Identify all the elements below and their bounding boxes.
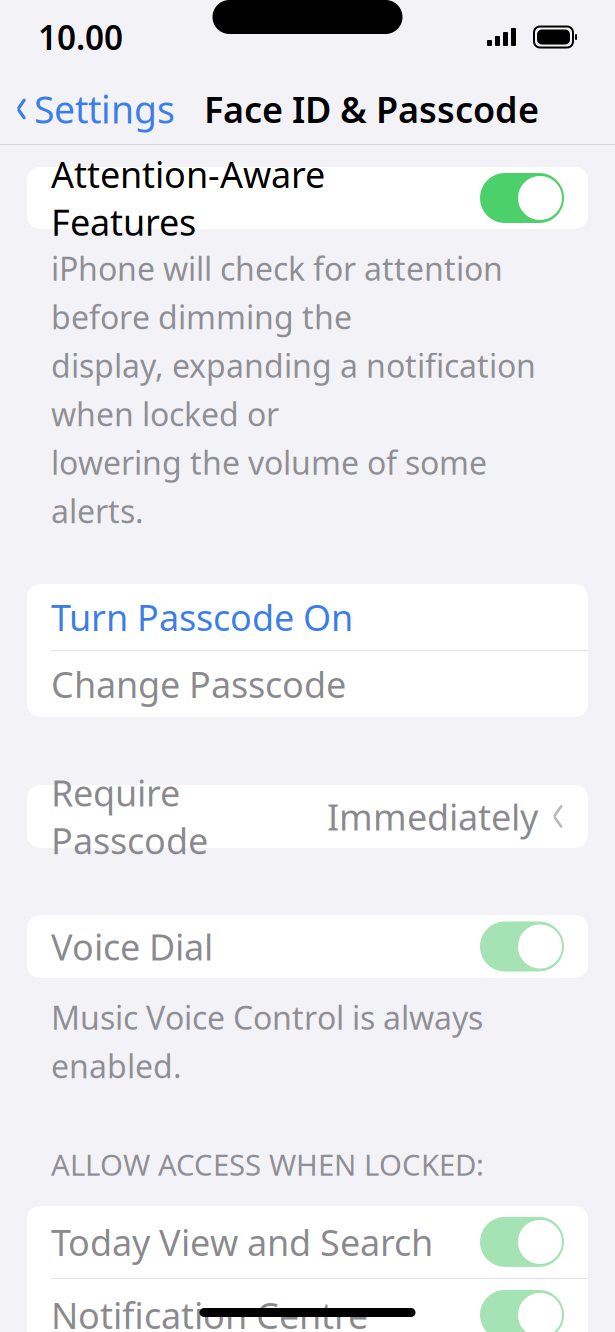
- staticText: Immediately: [327, 793, 538, 840]
- staticText: 10.00: [38, 15, 123, 59]
- staticText: Face ID & Passcode: [204, 85, 539, 133]
- staticText: Settings: [34, 84, 175, 134]
- button[interactable]: Attention-Aware Features: [27, 167, 588, 229]
- staticText: Music Voice Control is always enabled.: [51, 996, 483, 1087]
- button[interactable]: Settings: [16, 76, 175, 142]
- staticText: Voice Dial: [51, 923, 213, 970]
- staticText: Require Passcode: [51, 769, 208, 864]
- button[interactable]: Voice Dial: [27, 915, 588, 978]
- staticText: Notification Centre: [51, 1291, 368, 1332]
- button[interactable]: Turn Passcode On: [27, 584, 588, 650]
- staticText: Today View and Search: [51, 1218, 433, 1266]
- staticText: Turn Passcode On: [51, 593, 353, 641]
- staticText: Change Passcode: [51, 660, 346, 708]
- button[interactable]: Require Passcode: [27, 785, 588, 848]
- staticText: iPhone will check for attention before d…: [51, 247, 536, 532]
- staticText: Attention-Aware Features: [51, 150, 325, 246]
- button[interactable]: Today View and Search: [27, 1206, 588, 1278]
- button[interactable]: Notification Centre: [27, 1279, 588, 1332]
- button[interactable]: Change Passcode: [27, 651, 588, 717]
- staticText: ALLOW ACCESS WHEN LOCKED:: [51, 1145, 484, 1184]
